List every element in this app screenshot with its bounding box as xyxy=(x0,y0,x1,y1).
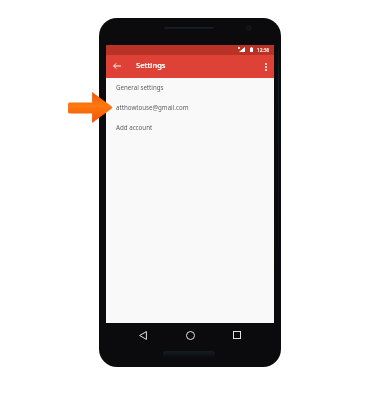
button[interactable]: More options xyxy=(258,59,274,75)
staticText: atthowtouse@gmail.com xyxy=(116,103,189,111)
button[interactable]: General settings xyxy=(106,77,274,97)
staticText: 12:36 xyxy=(257,47,270,54)
button[interactable]: atthowtouse@gmail.com xyxy=(106,97,274,117)
button[interactable]: Recent apps xyxy=(227,325,247,345)
button[interactable]: Back xyxy=(108,58,126,76)
button[interactable]: Add account xyxy=(106,117,274,137)
button[interactable]: Home xyxy=(180,325,200,345)
staticText: General settings xyxy=(116,83,164,91)
staticText: Add account xyxy=(116,123,153,131)
button[interactable]: Back xyxy=(133,325,153,345)
staticText: Settings xyxy=(136,60,166,70)
